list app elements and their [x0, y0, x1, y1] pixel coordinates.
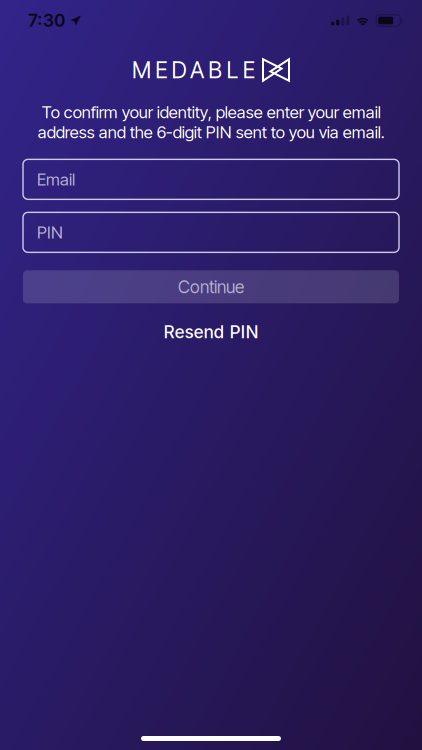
staticText: Resend PIN [163, 321, 258, 342]
button[interactable]: Email [23, 159, 399, 199]
staticText: Continue [178, 276, 244, 297]
staticText: MEDABLE [132, 56, 255, 84]
staticText: Email [37, 169, 75, 189]
button[interactable]: PIN [23, 212, 399, 252]
staticText: 7:30 [28, 10, 65, 31]
button[interactable]: Resend PIN [147, 314, 274, 349]
staticText: PIN [37, 222, 63, 242]
button[interactable]: Continue [23, 270, 399, 303]
staticText: To confirm your identity, please enter y… [37, 102, 384, 142]
